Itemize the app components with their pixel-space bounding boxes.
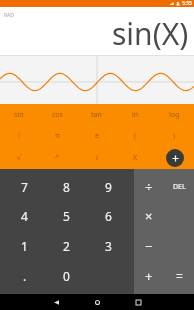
- button[interactable]: Home: [87, 294, 107, 310]
- staticText: cos: [52, 110, 63, 120]
- staticText: =: [176, 268, 183, 284]
- staticText: 2: [63, 238, 70, 254]
- button[interactable]: 8: [45, 172, 87, 201]
- button[interactable]: =: [164, 261, 194, 291]
- button[interactable]: Add: [166, 149, 184, 167]
- staticText: e: [95, 131, 99, 141]
- button[interactable]: e: [77, 125, 116, 147]
- button[interactable]: 1: [4, 231, 45, 261]
- button[interactable]: cos: [38, 104, 77, 125]
- button[interactable]: 7: [4, 172, 45, 201]
- staticText: ÷: [145, 178, 153, 196]
- button[interactable]: −: [134, 231, 164, 261]
- staticText: (: [134, 131, 137, 141]
- button[interactable]: .: [4, 261, 45, 291]
- button[interactable]: sin: [0, 104, 38, 125]
- button[interactable]: 0: [45, 261, 87, 291]
- staticText: sin(X): [112, 13, 189, 54]
- button[interactable]: ×: [134, 201, 164, 231]
- button[interactable]: tan: [77, 104, 116, 125]
- button[interactable]: 3: [87, 231, 129, 261]
- button[interactable]: 9: [87, 172, 129, 201]
- button[interactable]: RAD: [0, 7, 194, 55]
- button[interactable]: Recents: [128, 294, 148, 310]
- button[interactable]: +: [134, 261, 164, 291]
- button[interactable]: (: [116, 125, 155, 147]
- staticText: 8: [63, 179, 70, 195]
- button[interactable]: 2: [45, 231, 87, 261]
- button[interactable]: 5: [45, 201, 87, 231]
- button[interactable]: ÷: [134, 172, 164, 201]
- staticText: √: [17, 154, 22, 162]
- staticText: RAD: [4, 12, 14, 19]
- staticText: 9: [105, 179, 112, 195]
- staticText: X: [133, 153, 138, 163]
- button[interactable]: ln: [116, 104, 155, 125]
- staticText: 1: [21, 238, 28, 254]
- button[interactable]: 4: [4, 201, 45, 231]
- button[interactable]: DEL: [164, 172, 194, 201]
- staticText: 3: [105, 238, 112, 254]
- staticText: π: [55, 131, 60, 141]
- staticText: 0: [63, 268, 70, 284]
- staticText: tan: [91, 110, 102, 120]
- button[interactable]: 6: [87, 201, 129, 231]
- staticText: 7: [21, 179, 28, 195]
- button[interactable]: √: [0, 147, 38, 169]
- button[interactable]: X: [116, 147, 155, 169]
- button[interactable]: Back: [46, 294, 66, 310]
- staticText: 5: [63, 208, 70, 224]
- staticText: i: [96, 153, 98, 163]
- staticText: sin: [14, 110, 24, 120]
- staticText: log: [169, 110, 180, 120]
- staticText: ln: [132, 110, 139, 120]
- button[interactable]: π: [38, 125, 77, 147]
- staticText: ×: [145, 207, 153, 225]
- staticText: 5:55: [182, 0, 192, 7]
- staticText: 4: [21, 208, 28, 224]
- staticText: DEL: [173, 182, 186, 192]
- staticText: 6: [105, 208, 112, 224]
- staticText: −: [145, 237, 153, 255]
- staticText: ): [173, 131, 176, 141]
- button[interactable]: log: [155, 104, 194, 125]
- staticText: ^: [55, 153, 60, 163]
- button[interactable]: [155, 147, 194, 169]
- staticText: !: [18, 131, 20, 141]
- button[interactable]: ^: [38, 147, 77, 169]
- staticText: +: [145, 267, 153, 285]
- staticText: .: [23, 268, 27, 284]
- button[interactable]: ): [155, 125, 194, 147]
